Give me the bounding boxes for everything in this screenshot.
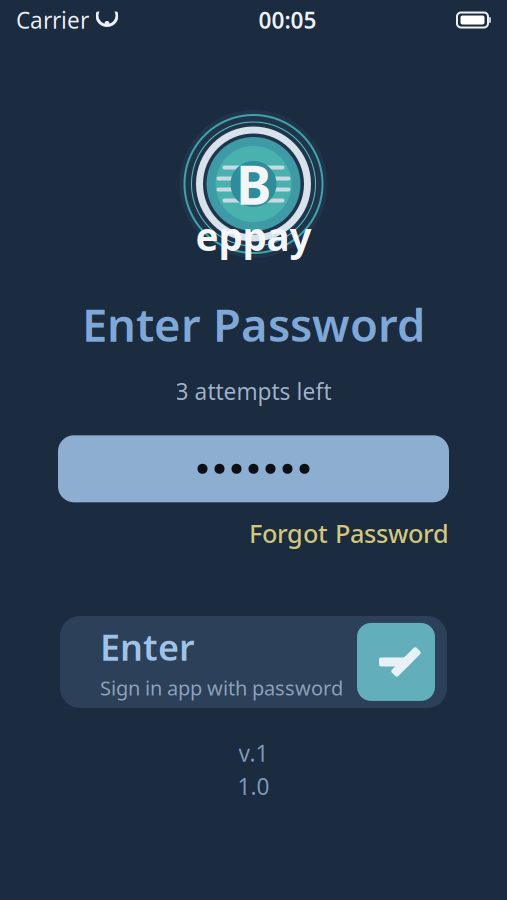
staticText: 00:05 xyxy=(258,5,316,35)
staticText: Sign in app with password xyxy=(100,675,343,701)
staticText: Forgot Password xyxy=(249,516,449,550)
staticText: 1.0 xyxy=(237,771,269,801)
button[interactable]: Enter xyxy=(60,616,447,708)
button[interactable]: Password xyxy=(58,435,449,502)
staticText: eppay xyxy=(195,210,311,262)
staticText: Carrier xyxy=(16,5,89,35)
staticText: Enter xyxy=(100,623,195,671)
button[interactable]: Forgot Password xyxy=(249,516,449,550)
staticText: B xyxy=(236,149,271,219)
staticText: Enter Password xyxy=(82,294,425,354)
staticText: v.1 xyxy=(238,738,268,768)
staticText: 3 attempts left xyxy=(175,376,331,406)
